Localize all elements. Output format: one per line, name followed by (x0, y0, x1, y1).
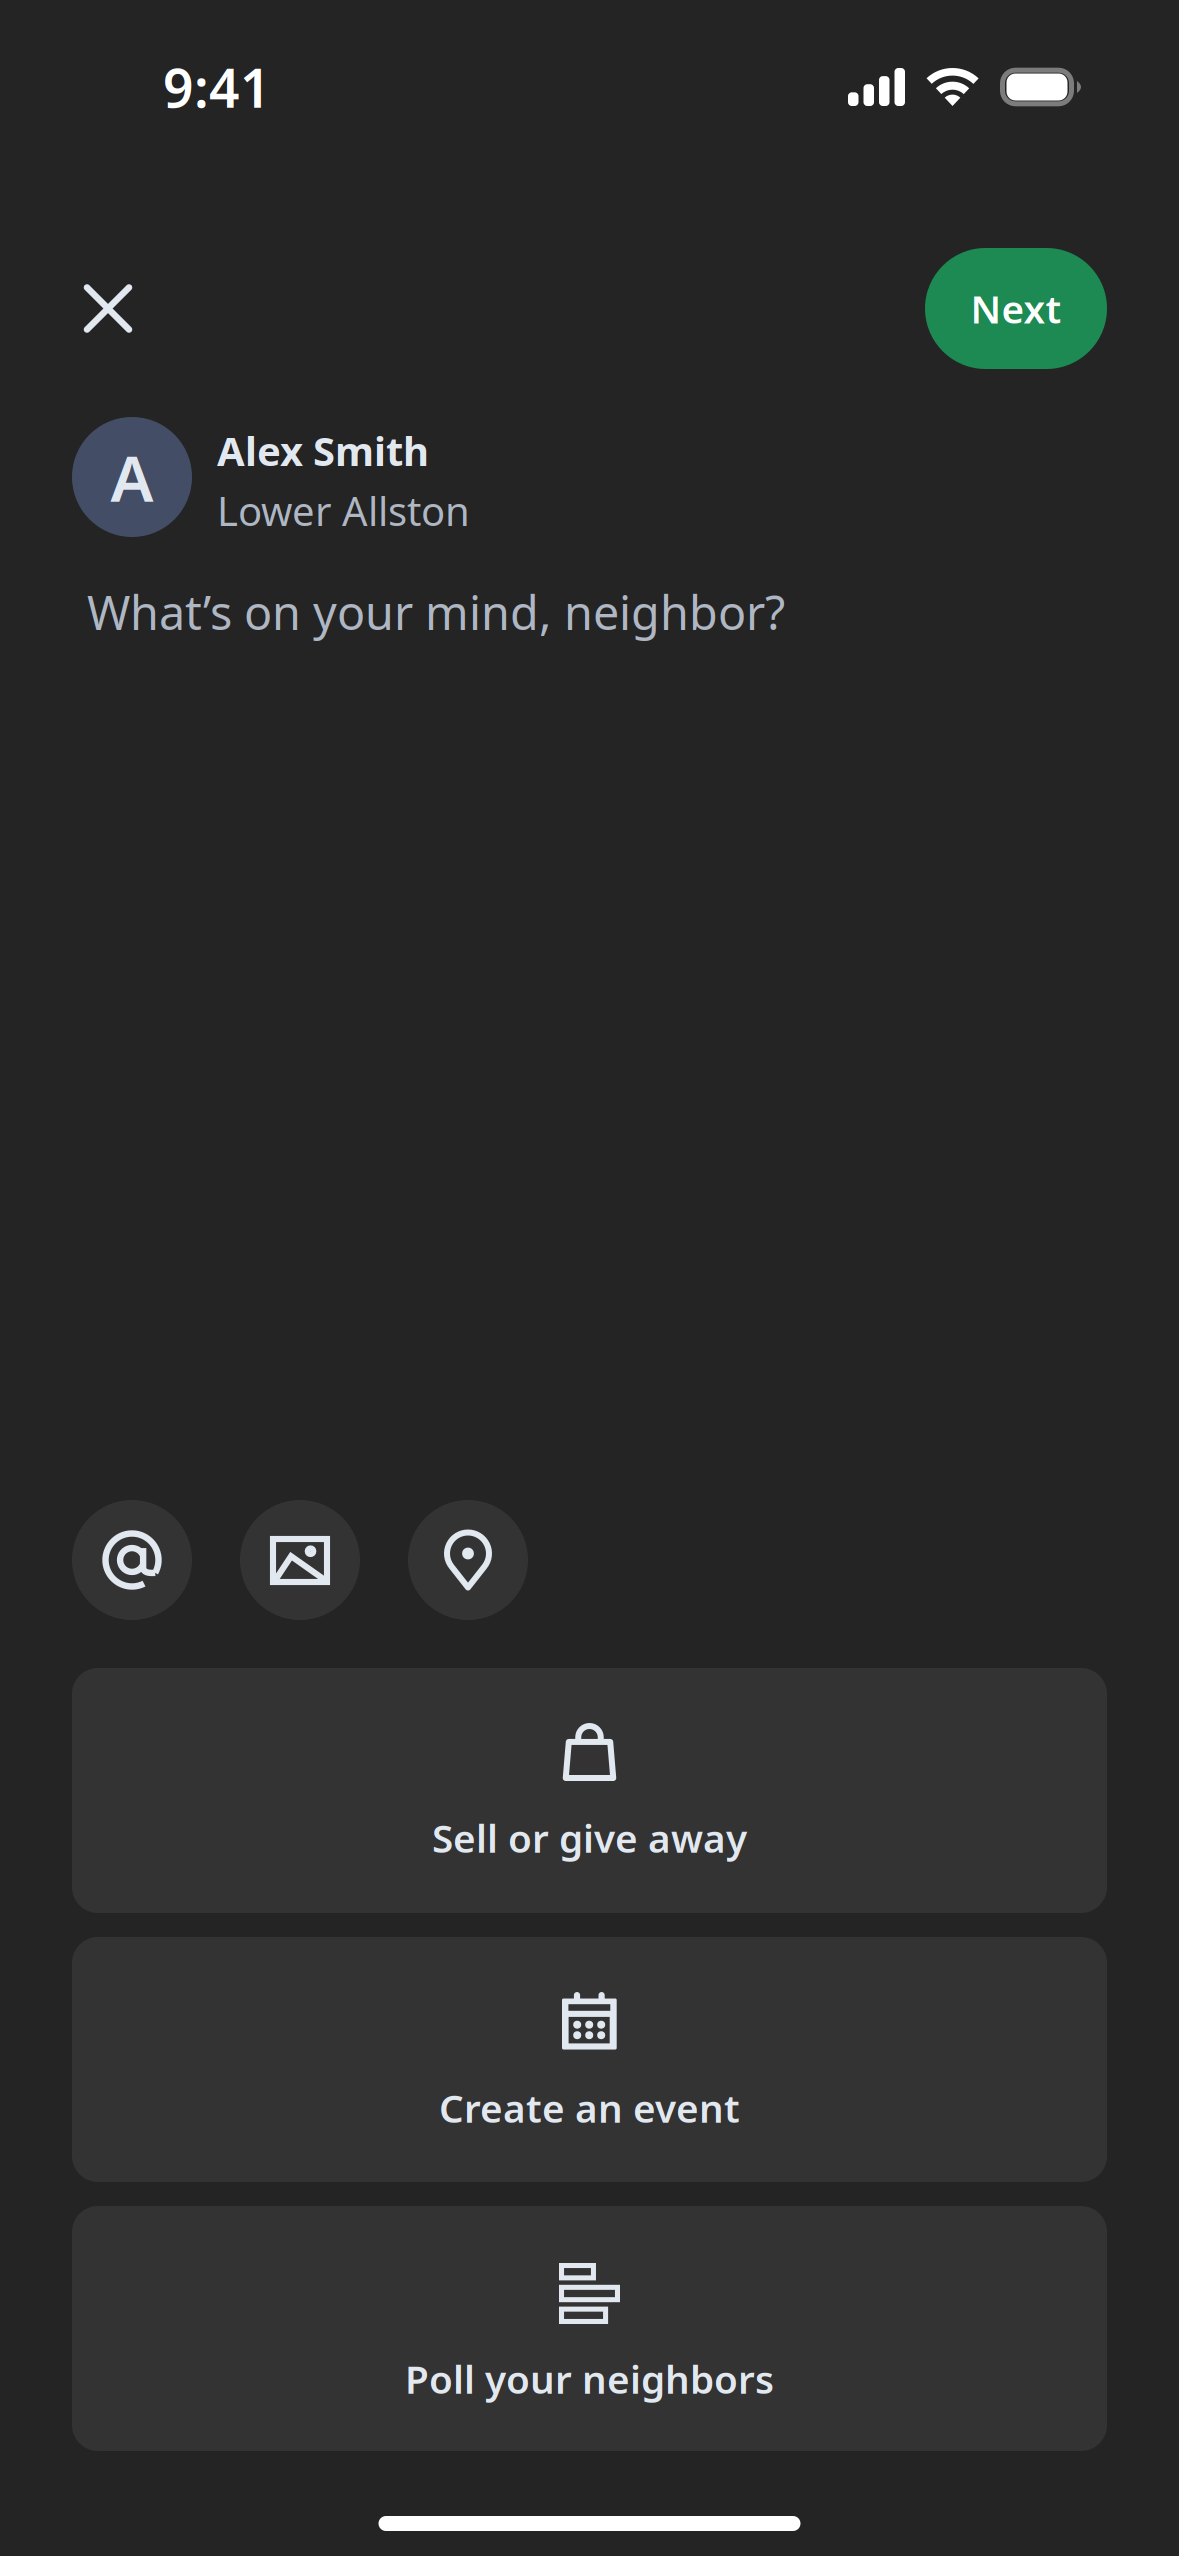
button[interactable]: Add photo (240, 1500, 360, 1620)
button[interactable]: Poll your neighbors (72, 2206, 1107, 2451)
staticText: Lower Allston (217, 484, 470, 537)
staticText: What’s on your mind, neighbor? (87, 581, 785, 643)
button[interactable]: Sell or give away (72, 1668, 1107, 1913)
button[interactable]: Close (48, 248, 168, 368)
staticText: Alex Smith (217, 424, 429, 477)
button[interactable]: Create an event (72, 1937, 1107, 2182)
staticText: Sell or give away (432, 1812, 747, 1863)
staticText: Next (970, 283, 1061, 334)
button[interactable]: Add location (408, 1500, 528, 1620)
button[interactable]: Mention a neighbor (72, 1500, 192, 1620)
staticText: 9:41 (163, 52, 271, 122)
staticText: Poll your neighbors (405, 2353, 774, 2404)
button[interactable]: Next (925, 248, 1107, 369)
staticText: A (110, 434, 153, 519)
staticText: Create an event (439, 2082, 740, 2133)
